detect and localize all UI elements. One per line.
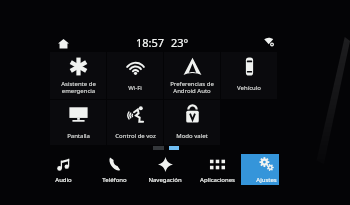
button[interactable]: Ajustes bbox=[241, 157, 291, 187]
button[interactable]: Vehículo bbox=[221, 52, 277, 99]
staticText: Preferencias de Android Auto bbox=[170, 80, 214, 95]
staticText: Navegación bbox=[148, 176, 182, 184]
button[interactable]: Pantalla bbox=[50, 100, 106, 145]
button[interactable]: Aplicaciones bbox=[192, 157, 242, 187]
staticText: Pantalla bbox=[67, 132, 90, 140]
button[interactable]: Navegación bbox=[140, 157, 190, 187]
staticText: Audio bbox=[55, 176, 72, 184]
staticText: Asistente de emergencia bbox=[61, 80, 96, 95]
staticText: Vehículo bbox=[237, 84, 261, 92]
staticText: 23° bbox=[171, 35, 189, 50]
staticText: Aplicaciones bbox=[200, 176, 235, 184]
button[interactable]: Modo valet bbox=[164, 100, 220, 145]
button[interactable]: Control de voz bbox=[107, 100, 163, 145]
button[interactable]: Audio bbox=[38, 157, 88, 187]
staticText: Ajustes bbox=[256, 176, 277, 184]
button[interactable]: Asistente de emergencia bbox=[50, 52, 106, 99]
staticText: Modo valet bbox=[176, 132, 208, 140]
staticText: Control de voz bbox=[115, 132, 156, 140]
button[interactable]: Wi-Fi bbox=[107, 52, 163, 99]
button[interactable]: Home bbox=[58, 38, 69, 49]
button[interactable]: Teléfono bbox=[89, 157, 139, 187]
staticText: Teléfono bbox=[102, 176, 127, 184]
button[interactable]: Wi-Fi disconnected bbox=[264, 37, 274, 47]
staticText: 18:57 bbox=[136, 35, 165, 50]
staticText: Wi-Fi bbox=[128, 84, 142, 92]
button[interactable]: Preferencias de Android Auto bbox=[164, 52, 220, 99]
